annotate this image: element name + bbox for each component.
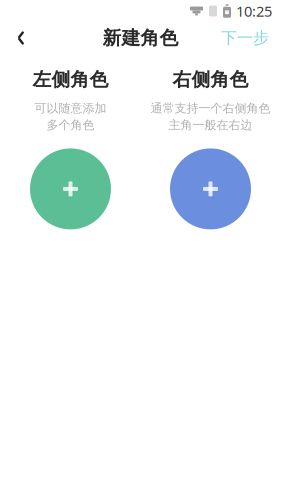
staticText: 10:25 bbox=[236, 1, 272, 21]
staticText: 左侧角色 bbox=[32, 68, 108, 91]
staticText: 下一步 bbox=[221, 28, 269, 48]
button[interactable]: 返回 bbox=[4, 22, 38, 54]
staticText: 右侧角色 bbox=[172, 68, 248, 91]
staticText: 主角一般在右边 bbox=[168, 118, 252, 132]
staticText: 可以随意添加 bbox=[34, 101, 106, 116]
staticText: 多个角色 bbox=[46, 118, 94, 132]
staticText: 新建角色 bbox=[102, 26, 178, 49]
button[interactable]: 下一步 bbox=[213, 22, 277, 54]
button[interactable]: 添加左侧角色 bbox=[30, 148, 111, 229]
button[interactable]: 添加右侧角色 bbox=[170, 148, 251, 229]
staticText: 通常支持一个右侧角色 bbox=[150, 101, 270, 116]
